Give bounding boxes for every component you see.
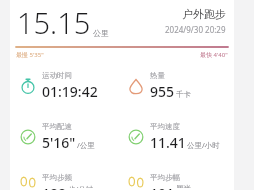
staticText: 步/分钟: [68, 184, 94, 188]
other: 热量: [127, 77, 145, 95]
staticText: 最快 4'40": [200, 51, 228, 59]
other: 运动时间: [19, 77, 37, 95]
staticText: 955: [150, 82, 175, 101]
other: 平均步幅: [127, 173, 145, 190]
staticText: 运动时间: [42, 71, 72, 80]
staticText: 公里/小时: [187, 140, 220, 150]
other: 平均步频: [19, 173, 37, 190]
button[interactable]: 热量: [127, 71, 231, 101]
staticText: 最慢 5'35": [16, 51, 44, 59]
staticText: 千卡: [176, 90, 191, 99]
button[interactable]: 平均步频: [19, 173, 127, 190]
staticText: 平均步幅: [150, 173, 180, 182]
staticText: 平均速度: [150, 122, 180, 131]
staticText: 2024/9/30 20:29: [165, 24, 226, 35]
staticText: 11.41: [150, 133, 186, 152]
button[interactable]: 运动时间: [19, 71, 127, 101]
staticText: 188: [42, 184, 67, 190]
staticText: 101: [150, 184, 175, 190]
staticText: 平均配速: [42, 122, 72, 131]
button[interactable]: 平均配速: [19, 122, 127, 152]
staticText: 15.15: [17, 3, 91, 42]
button[interactable]: 平均速度: [127, 122, 231, 152]
other: 平均配速: [19, 128, 37, 146]
staticText: /公里: [77, 140, 95, 150]
other: 平均速度: [127, 128, 145, 146]
staticText: 01:19:42: [42, 82, 98, 101]
staticText: 热量: [150, 71, 165, 80]
staticText: 平均步频: [42, 173, 72, 182]
staticText: 5'16": [42, 133, 76, 152]
staticText: 公里: [93, 28, 109, 38]
staticText: 厘米: [176, 184, 191, 188]
button[interactable]: 平均步幅: [127, 173, 231, 190]
staticText: 户外跑步: [182, 7, 226, 21]
